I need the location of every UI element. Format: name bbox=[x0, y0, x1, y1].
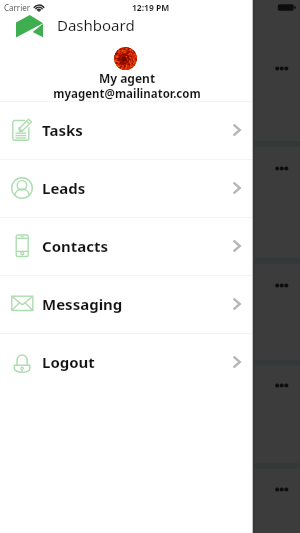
staticText: 12:19 PM bbox=[132, 2, 170, 14]
staticText: Dashboard bbox=[57, 15, 135, 35]
staticText: myagent@mailinator.com bbox=[1, 86, 253, 102]
button[interactable]: Messaging bbox=[0, 275, 252, 333]
staticText: Messaging bbox=[42, 294, 123, 314]
staticText: Contacts bbox=[42, 236, 109, 256]
button[interactable]: Contacts bbox=[0, 217, 252, 275]
button[interactable]: Logout bbox=[0, 333, 252, 391]
staticText: Tasks bbox=[42, 120, 83, 140]
staticText: My agent bbox=[1, 70, 253, 86]
button[interactable]: Tasks bbox=[0, 101, 252, 159]
staticText: Carrier bbox=[4, 2, 31, 13]
staticText: Logout bbox=[42, 352, 95, 372]
button[interactable]: Leads bbox=[0, 159, 252, 217]
staticText: Leads bbox=[42, 178, 86, 198]
